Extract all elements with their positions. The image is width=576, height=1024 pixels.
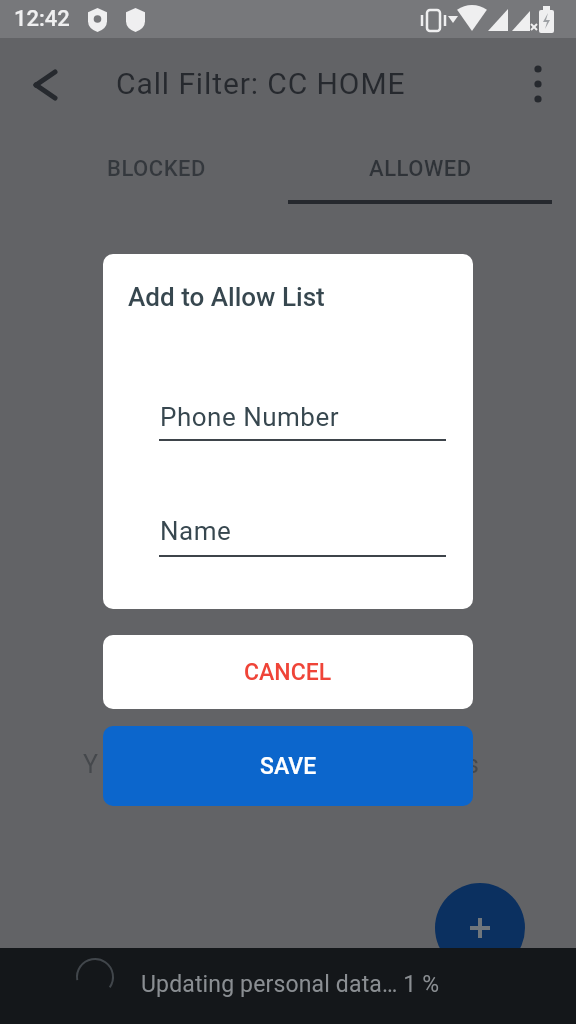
staticText: SAVE [260, 753, 317, 780]
button[interactable]: BLOCKED [24, 134, 288, 204]
button[interactable]: SAVE [103, 726, 473, 806]
staticText: Add to Allow List [128, 282, 325, 312]
staticText: Updating personal data… 1 % [141, 971, 440, 998]
staticText: 12:42 [14, 6, 70, 32]
button[interactable]: CANCEL [103, 635, 473, 709]
staticText: CANCEL [244, 659, 332, 686]
staticText: ALLOWED [369, 156, 472, 182]
staticText: Y [83, 750, 99, 779]
button[interactable]: ALLOWED [288, 134, 552, 204]
staticText: Name [160, 516, 232, 546]
button[interactable] [159, 394, 449, 444]
button[interactable] [435, 883, 525, 973]
button[interactable] [20, 60, 70, 110]
staticText: s [466, 750, 479, 779]
staticText: BLOCKED [107, 156, 206, 182]
staticText: Phone Number [160, 402, 340, 432]
button[interactable] [159, 509, 449, 559]
button[interactable] [513, 60, 563, 110]
staticText: Call Filter: CC HOME [116, 66, 406, 101]
